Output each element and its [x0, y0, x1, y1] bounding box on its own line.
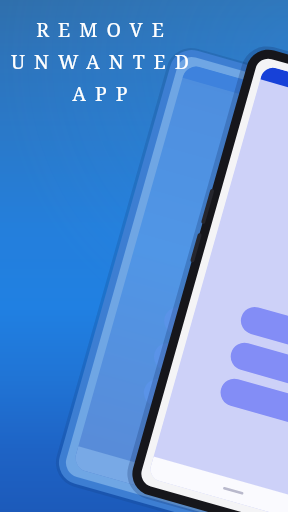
staticText: UNWANTED [11, 48, 198, 75]
staticText: REMOVE [36, 16, 173, 43]
staticText: APP [72, 80, 137, 107]
